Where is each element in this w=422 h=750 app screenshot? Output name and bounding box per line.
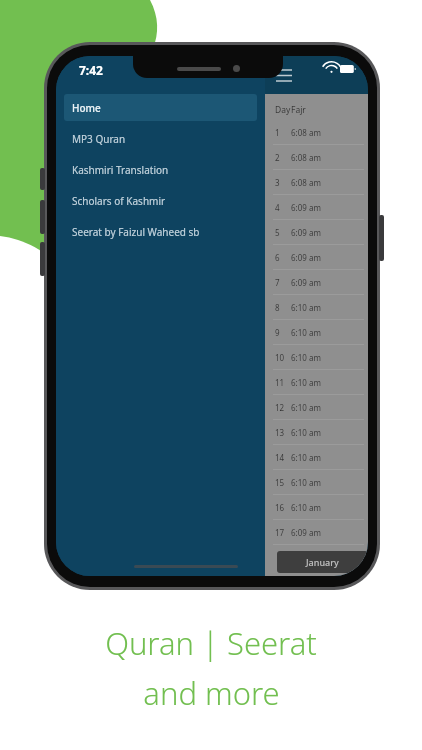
staticText: 16 bbox=[275, 502, 285, 513]
staticText: and more bbox=[143, 672, 280, 714]
staticText: 6:10 am bbox=[291, 377, 321, 388]
staticText: 8 bbox=[275, 302, 280, 313]
staticText: 4 bbox=[275, 202, 280, 213]
button[interactable]: Kashmiri Translation bbox=[64, 156, 257, 183]
staticText: 6:10 am bbox=[291, 352, 321, 363]
staticText: 6:10 am bbox=[291, 452, 321, 463]
staticText: 7 bbox=[275, 277, 280, 288]
staticText: 11 bbox=[275, 377, 285, 388]
button[interactable]: Scholars of Kashmir bbox=[64, 187, 257, 214]
staticText: 6 bbox=[275, 252, 280, 263]
staticText: 5 bbox=[275, 227, 280, 238]
staticText: 6:10 am bbox=[291, 427, 321, 438]
staticText: 1 bbox=[275, 127, 280, 138]
button[interactable]: Seerat by Faizul Waheed sb bbox=[64, 218, 257, 245]
staticText: 6:09 am bbox=[291, 527, 321, 538]
button[interactable]: Home bbox=[64, 94, 257, 121]
staticText: 6:09 am bbox=[291, 277, 321, 288]
staticText: January bbox=[306, 556, 339, 568]
staticText: 6:08 am bbox=[291, 152, 321, 163]
staticText: 15 bbox=[275, 477, 285, 488]
staticText: Home bbox=[72, 101, 101, 115]
staticText: 10 bbox=[275, 352, 285, 363]
staticText: 3 bbox=[275, 177, 280, 188]
button[interactable]: MP3 Quran bbox=[64, 125, 257, 152]
staticText: 6:09 am bbox=[291, 252, 321, 263]
staticText: 6:10 am bbox=[291, 477, 321, 488]
staticText: Day bbox=[275, 104, 291, 116]
staticText: 2 bbox=[275, 152, 280, 163]
staticText: MP3 Quran bbox=[72, 132, 126, 146]
staticText: 6:09 am bbox=[291, 227, 321, 238]
staticText: 14 bbox=[275, 452, 285, 463]
staticText: 6:10 am bbox=[291, 302, 321, 313]
staticText: 6:10 am bbox=[291, 502, 321, 513]
staticText: Seerat by Faizul Waheed sb bbox=[72, 225, 200, 239]
staticText: 7:42 bbox=[79, 62, 103, 78]
staticText: 6:10 am bbox=[291, 402, 321, 413]
staticText: 6:10 am bbox=[291, 327, 321, 338]
staticText: 9 bbox=[275, 327, 280, 338]
staticText: 6:09 am bbox=[291, 202, 321, 213]
staticText: Kashmiri Translation bbox=[72, 163, 169, 177]
button[interactable]: January bbox=[277, 551, 368, 573]
button[interactable]: Open menu bbox=[273, 64, 295, 86]
staticText: 6:08 am bbox=[291, 177, 321, 188]
staticText: 17 bbox=[275, 527, 285, 538]
staticText: 13 bbox=[275, 427, 285, 438]
staticText: Quran | Seerat bbox=[105, 622, 317, 664]
staticText: Scholars of Kashmir bbox=[72, 194, 166, 208]
staticText: 6:08 am bbox=[291, 127, 321, 138]
staticText: Fajr bbox=[291, 104, 306, 116]
staticText: 12 bbox=[275, 402, 285, 413]
